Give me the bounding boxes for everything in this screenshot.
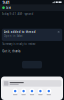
button[interactable]: Share target <box>11 88 19 95</box>
button[interactable]: Lexi <box>0 4 64 11</box>
staticText: 9:41 <box>2 0 9 5</box>
button[interactable]: Share target <box>36 88 45 95</box>
staticText: Summary is ready to review <box>2 42 35 46</box>
button[interactable]: Share target <box>45 88 53 95</box>
staticText: Link added to thread <box>4 30 36 34</box>
staticText: Today 9:41 AM · synced <box>2 12 34 16</box>
staticText: Open in Safari <box>4 34 23 38</box>
button[interactable]: Share target <box>19 88 28 95</box>
staticText: Lexi <box>6 6 11 9</box>
staticText: Got it, thanks <box>2 49 20 53</box>
button[interactable]: Dismiss <box>57 30 60 33</box>
button[interactable]: Share target <box>28 88 36 95</box>
